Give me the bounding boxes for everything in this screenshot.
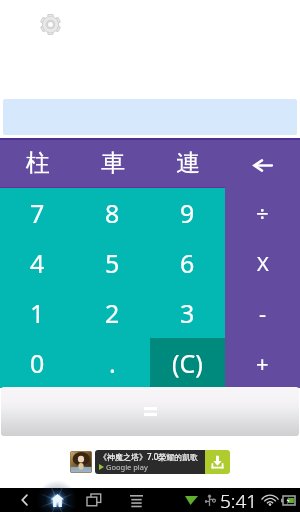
staticText: 4 bbox=[30, 246, 45, 280]
button[interactable]: Backspace bbox=[225, 138, 300, 188]
button[interactable]: Back bbox=[12, 488, 38, 512]
staticText: 2 bbox=[105, 296, 120, 330]
button[interactable] bbox=[70, 451, 92, 473]
button[interactable]: Menu bbox=[122, 488, 150, 512]
button[interactable]: 7 bbox=[0, 188, 75, 238]
button[interactable]: 0 bbox=[0, 338, 75, 388]
button[interactable]: . bbox=[75, 338, 150, 388]
staticText: Google play bbox=[106, 462, 148, 472]
staticText: ÷ bbox=[256, 198, 269, 228]
staticText: 1 bbox=[30, 296, 45, 330]
button[interactable]: 3 bbox=[150, 288, 225, 338]
staticText: 7 bbox=[30, 196, 45, 230]
button[interactable]: (C) bbox=[150, 338, 225, 388]
staticText: 柱 bbox=[26, 148, 50, 178]
button[interactable]: + bbox=[225, 338, 300, 388]
staticText: 8 bbox=[105, 196, 120, 230]
button[interactable]: 6 bbox=[150, 238, 225, 288]
button[interactable]: 9 bbox=[150, 188, 225, 238]
button[interactable]: 連 bbox=[150, 138, 225, 188]
staticText: + bbox=[256, 348, 269, 378]
button[interactable]: 4 bbox=[0, 238, 75, 288]
staticText: 5:41 bbox=[220, 488, 258, 512]
staticText: - bbox=[259, 298, 267, 328]
staticText: . bbox=[109, 346, 116, 380]
button[interactable]: 5 bbox=[75, 238, 150, 288]
button[interactable]: 8 bbox=[75, 188, 150, 238]
button[interactable]: Equals bbox=[1, 387, 299, 436]
button[interactable]: Settings bbox=[34, 8, 66, 40]
button[interactable]: 2 bbox=[75, 288, 150, 338]
staticText: X bbox=[257, 250, 269, 277]
button[interactable]: Download bbox=[205, 450, 230, 474]
staticText: 連 bbox=[176, 148, 200, 178]
button[interactable]: ÷ bbox=[225, 188, 300, 238]
staticText: (C) bbox=[172, 346, 203, 380]
button[interactable]: 1 bbox=[0, 288, 75, 338]
button[interactable]: Home bbox=[42, 488, 72, 512]
button[interactable]: 柱 bbox=[0, 138, 75, 188]
button[interactable]: X bbox=[225, 238, 300, 288]
staticText: 6 bbox=[180, 246, 195, 280]
staticText: 3 bbox=[180, 296, 195, 330]
button[interactable]: Recents bbox=[80, 488, 108, 512]
button[interactable]: 《神魔之塔》7.0榮耀的凱歌 bbox=[95, 450, 205, 474]
button[interactable]: 車 bbox=[75, 138, 150, 188]
staticText: 5 bbox=[105, 246, 120, 280]
staticText: 0 bbox=[30, 346, 45, 380]
staticText: 《神魔之塔》7.0榮耀的凱歌 bbox=[99, 451, 199, 462]
button[interactable]: - bbox=[225, 288, 300, 338]
staticText: 9 bbox=[180, 196, 195, 230]
staticText: 車 bbox=[101, 148, 125, 178]
